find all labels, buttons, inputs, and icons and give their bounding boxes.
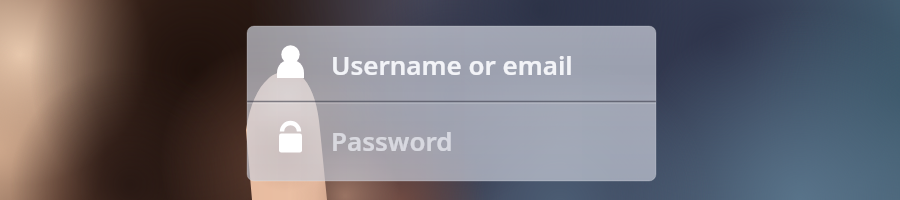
button[interactable]: Username or email xyxy=(247,26,656,102)
button[interactable]: Password xyxy=(247,102,656,182)
